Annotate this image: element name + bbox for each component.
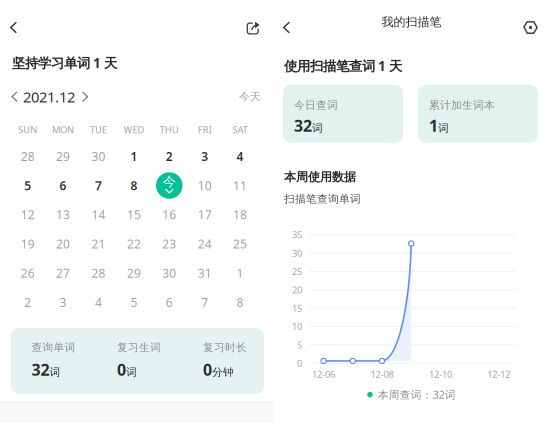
button[interactable]: 4 bbox=[222, 142, 258, 171]
staticText: 6 bbox=[166, 294, 173, 310]
button[interactable]: 8 bbox=[222, 288, 258, 317]
staticText: 7 bbox=[201, 294, 208, 310]
staticText: 词 bbox=[312, 121, 323, 135]
staticText: 今 bbox=[163, 174, 176, 190]
button[interactable]: 31 bbox=[187, 258, 222, 288]
button[interactable]: 3 bbox=[45, 288, 81, 317]
button[interactable]: 26 bbox=[10, 258, 45, 288]
staticText: 15 bbox=[292, 302, 302, 314]
button[interactable]: Back bbox=[273, 0, 300, 44]
button[interactable]: Settings bbox=[517, 0, 544, 44]
button[interactable]: 29 bbox=[45, 142, 81, 171]
button[interactable]: 28 bbox=[81, 258, 116, 288]
staticText: SAT bbox=[233, 123, 248, 136]
button[interactable]: Next month bbox=[75, 87, 95, 107]
button[interactable]: 30 bbox=[152, 258, 187, 288]
staticText: 5 bbox=[297, 339, 302, 351]
button[interactable]: 7 bbox=[81, 171, 116, 200]
staticText: 0 bbox=[203, 359, 212, 380]
staticText: 本周查词：32词 bbox=[378, 387, 456, 402]
staticText: 0 bbox=[297, 357, 302, 369]
staticText: 23 bbox=[162, 236, 176, 252]
staticText: 12-12 bbox=[487, 368, 510, 380]
staticText: 27 bbox=[56, 265, 70, 281]
button[interactable]: 13 bbox=[45, 200, 81, 229]
button[interactable]: 11 bbox=[222, 171, 258, 200]
staticText: 2 bbox=[166, 148, 173, 164]
staticText: 6 bbox=[60, 177, 67, 193]
button[interactable]: 2 bbox=[152, 142, 187, 171]
button[interactable]: 20 bbox=[45, 229, 81, 258]
staticText: 2021.12 bbox=[23, 87, 75, 106]
staticText: 30 bbox=[162, 265, 176, 281]
button[interactable]: 28 bbox=[10, 142, 45, 171]
staticText: 12-10 bbox=[429, 368, 452, 380]
staticText: 扫描笔查询单词 bbox=[284, 192, 361, 205]
staticText: 12-06 bbox=[312, 368, 335, 380]
button[interactable]: 10 bbox=[187, 171, 222, 200]
button[interactable]: 21 bbox=[81, 229, 116, 258]
staticText: 今日查词 bbox=[294, 99, 338, 112]
button[interactable]: 23 bbox=[152, 229, 187, 258]
staticText: MON bbox=[52, 123, 74, 136]
button[interactable]: 16 bbox=[152, 200, 187, 229]
button[interactable]: 8 bbox=[116, 171, 152, 200]
button[interactable]: 14 bbox=[81, 200, 116, 229]
button[interactable]: Today, December 9 bbox=[152, 171, 187, 200]
button[interactable]: 今天 bbox=[239, 90, 273, 103]
button[interactable]: 30 bbox=[81, 142, 116, 171]
staticText: 25 bbox=[292, 265, 302, 278]
button[interactable]: 24 bbox=[187, 229, 222, 258]
button[interactable]: 18 bbox=[222, 200, 258, 229]
staticText: 3 bbox=[60, 294, 67, 310]
button[interactable]: 27 bbox=[45, 258, 81, 288]
button[interactable]: Previous month bbox=[6, 87, 23, 107]
staticText: 10 bbox=[198, 177, 212, 193]
button[interactable]: 6 bbox=[45, 171, 81, 200]
button[interactable]: 2 bbox=[10, 288, 45, 317]
button[interactable]: 6 bbox=[152, 288, 187, 317]
button[interactable]: 15 bbox=[116, 200, 152, 229]
staticText: 复习生词 bbox=[117, 341, 161, 354]
staticText: 4 bbox=[95, 294, 102, 310]
staticText: FRI bbox=[198, 123, 212, 136]
button[interactable]: 1 bbox=[222, 258, 258, 288]
button[interactable]: 1 bbox=[116, 142, 152, 171]
staticText: 复习时长 bbox=[203, 341, 247, 354]
staticText: 今天 bbox=[239, 90, 261, 103]
staticText: 坚持学习单词 1 天 bbox=[12, 54, 117, 72]
button[interactable]: 19 bbox=[10, 229, 45, 258]
button[interactable]: Back bbox=[0, 0, 27, 44]
staticText: 11 bbox=[233, 177, 247, 193]
button[interactable]: Share bbox=[240, 0, 267, 44]
button[interactable]: 12 bbox=[10, 200, 45, 229]
staticText: 14 bbox=[91, 207, 105, 223]
staticText: 本周使用数据 bbox=[284, 170, 356, 184]
staticText: 18 bbox=[233, 207, 247, 223]
button[interactable]: 17 bbox=[187, 200, 222, 229]
staticText: TUE bbox=[90, 123, 107, 136]
button[interactable]: 5 bbox=[10, 171, 45, 200]
button[interactable]: 4 bbox=[81, 288, 116, 317]
staticText: 7 bbox=[95, 177, 102, 193]
staticText: 29 bbox=[127, 265, 141, 281]
button[interactable]: 7 bbox=[187, 288, 222, 317]
staticText: 查询单词 bbox=[31, 341, 75, 354]
button[interactable]: 5 bbox=[116, 288, 152, 317]
staticText: 25 bbox=[233, 236, 247, 252]
staticText: 分钟 bbox=[212, 366, 234, 379]
staticText: 26 bbox=[21, 265, 35, 281]
button[interactable]: 3 bbox=[187, 142, 222, 171]
button[interactable]: 22 bbox=[116, 229, 152, 258]
staticText: 8 bbox=[130, 177, 137, 193]
staticText: 10 bbox=[292, 320, 302, 333]
button[interactable]: 25 bbox=[222, 229, 258, 258]
staticText: 28 bbox=[21, 148, 35, 164]
button[interactable]: 29 bbox=[116, 258, 152, 288]
staticText: 29 bbox=[56, 148, 70, 164]
staticText: 2 bbox=[24, 294, 31, 310]
staticText: 1 bbox=[237, 265, 244, 281]
staticText: 32 bbox=[31, 359, 49, 380]
staticText: 5 bbox=[24, 177, 31, 193]
staticText: 词 bbox=[49, 366, 60, 379]
